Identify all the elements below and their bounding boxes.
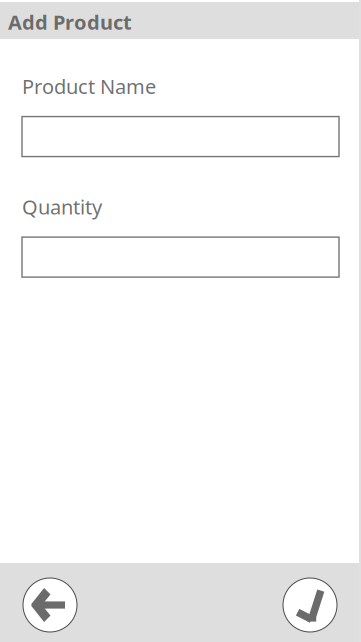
button[interactable]: Save (283, 578, 337, 632)
button[interactable]: Back (23, 578, 77, 632)
staticText: Quantity (22, 194, 102, 220)
staticText: Product Name (22, 73, 156, 100)
staticText: Add Product (8, 9, 132, 35)
